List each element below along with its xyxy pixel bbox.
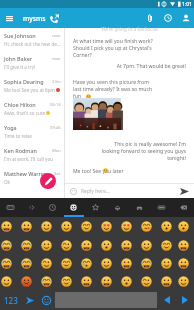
button[interactable]: Emoji 7 [136, 217, 156, 236]
button[interactable]: Emoji 20 [0, 254, 16, 272]
button[interactable]: Contacts [179, 11, 193, 25]
staticText: Me too! See you later [73, 168, 124, 175]
button[interactable]: Emoji 36 [116, 272, 136, 290]
button[interactable]: Travel [128, 198, 150, 217]
staticText: This pic is really awesome! I'm looking … [65, 141, 186, 162]
button[interactable]: Emoji 35 [96, 272, 116, 290]
button[interactable]: Objects [106, 198, 128, 217]
staticText: Ok [4, 179, 11, 185]
staticText: I'll give it a try! [4, 64, 36, 70]
button[interactable]: Emoji 17 [136, 236, 156, 254]
button[interactable]: Insert emoji [68, 186, 78, 196]
button[interactable]: Emoji 28 [156, 254, 176, 272]
button[interactable]: Emoji 6 [116, 217, 136, 236]
button[interactable]: Emoji 38 [156, 272, 176, 290]
staticText: Matthew Warren [4, 170, 54, 177]
button[interactable]: Emoji 19 [176, 236, 190, 254]
button[interactable]: Emoji 13 [56, 236, 76, 254]
staticText: Ken Rodman [4, 147, 52, 154]
button[interactable]: Sue Johnson [0, 28, 64, 51]
button[interactable]: Emoji 32 [36, 272, 56, 290]
button[interactable]: Emoji 15 [96, 236, 116, 254]
staticText: We're going to a barbecue [65, 26, 194, 32]
button[interactable]: Emoji 23 [56, 254, 76, 272]
button[interactable]: Sophia Dearing [0, 74, 64, 97]
button[interactable]: History [161, 11, 175, 25]
button[interactable]: Yoga [0, 120, 64, 143]
staticText: 23m [52, 79, 61, 85]
button[interactable]: Emoji 10 [0, 236, 16, 254]
button[interactable]: Emoji 29 [176, 254, 190, 272]
button[interactable]: Emoji 4 [76, 217, 96, 236]
button[interactable]: Emoji 11 [16, 236, 36, 254]
button[interactable]: Emoji 39 [176, 272, 190, 290]
button[interactable]: Emoji 0 [0, 217, 16, 236]
button[interactable]: John Baker [0, 51, 64, 74]
staticText: At what time will you finish work? Shoul… [73, 38, 153, 59]
button[interactable]: Emoji 18 [156, 236, 176, 254]
button[interactable]: Call [48, 12, 61, 25]
button[interactable]: Move cursor right [176, 290, 194, 310]
button[interactable]: Emoji 12 [36, 236, 56, 254]
staticText: Hi, check out the new de... [4, 41, 61, 47]
staticText: 1:01 [182, 1, 192, 8]
staticText: Time to relax [4, 133, 33, 139]
button[interactable]: Emoji 3 [56, 217, 76, 236]
button[interactable]: Symbols [150, 198, 172, 217]
staticText: 123 [4, 295, 18, 306]
staticText: Have you seen this picture from last tim… [73, 79, 153, 100]
staticText: Reply here... [81, 188, 110, 195]
button[interactable]: Send message [178, 185, 191, 198]
button[interactable]: Emoji 24 [76, 254, 96, 272]
staticText: mysms [23, 14, 46, 23]
staticText: At 7pm. That would be great! [65, 63, 186, 70]
button[interactable]: Emoji 30 [0, 272, 16, 290]
staticText: now [52, 33, 61, 39]
button[interactable]: Emoji keyboard [38, 290, 54, 310]
button[interactable]: Emoji 22 [36, 254, 56, 272]
button[interactable]: Recent [42, 198, 63, 217]
button[interactable]: Emoji 5 [96, 217, 116, 236]
button[interactable]: Emoji 14 [76, 236, 96, 254]
staticText: John Baker [4, 55, 52, 62]
button[interactable]: Emoji 21 [16, 254, 36, 272]
button[interactable]: Send [22, 290, 38, 310]
button[interactable]: Emoji 1 [16, 217, 36, 236]
button[interactable]: Emoji 8 [156, 217, 176, 236]
button[interactable]: Emoji 2 [36, 217, 56, 236]
button[interactable]: 123 [0, 290, 22, 310]
button[interactable]: Favorites [84, 198, 106, 217]
button[interactable]: Chloe Hilton [0, 97, 64, 120]
staticText: Yoga [4, 124, 50, 131]
button[interactable]: Ken Rodman [0, 143, 64, 166]
button[interactable]: Emoticons [21, 198, 42, 217]
button[interactable]: Emoji 9 [176, 217, 190, 236]
staticText: Mon [52, 148, 61, 154]
button[interactable]: Emoji 33 [56, 272, 76, 290]
staticText: I'm at work, I'll call you lat... [4, 156, 61, 162]
button[interactable]: Emoji 25 [96, 254, 116, 272]
staticText: Sue Johnson [4, 32, 52, 39]
staticText: Me too! See you at 6pm [4, 87, 55, 93]
button[interactable]: Backspace [172, 198, 194, 217]
button[interactable]: Move cursor left [158, 290, 176, 310]
button[interactable]: Matthew Warren [0, 166, 64, 189]
button[interactable]: Smileys [63, 198, 84, 217]
button[interactable]: Open navigation menu [0, 8, 18, 28]
button[interactable]: Emoji 31 [16, 272, 36, 290]
button[interactable]: Keyboard [0, 198, 21, 217]
staticText: Sophia Dearing [4, 78, 52, 85]
button[interactable]: Emoji 34 [76, 272, 96, 290]
button[interactable]: Emoji 16 [116, 236, 136, 254]
staticText: 09:46 [50, 125, 61, 131]
button[interactable]: Compose new message [40, 173, 56, 189]
staticText: now [52, 56, 61, 62]
button[interactable]: Emoji 27 [136, 254, 156, 272]
button[interactable]: Emoji 37 [136, 272, 156, 290]
button[interactable]: Emoji 26 [116, 254, 136, 272]
staticText: Chloe Hilton [4, 101, 50, 108]
staticText: Sat [54, 171, 61, 177]
staticText: 06:14 [50, 102, 61, 108]
button[interactable]: Attach [143, 11, 157, 25]
